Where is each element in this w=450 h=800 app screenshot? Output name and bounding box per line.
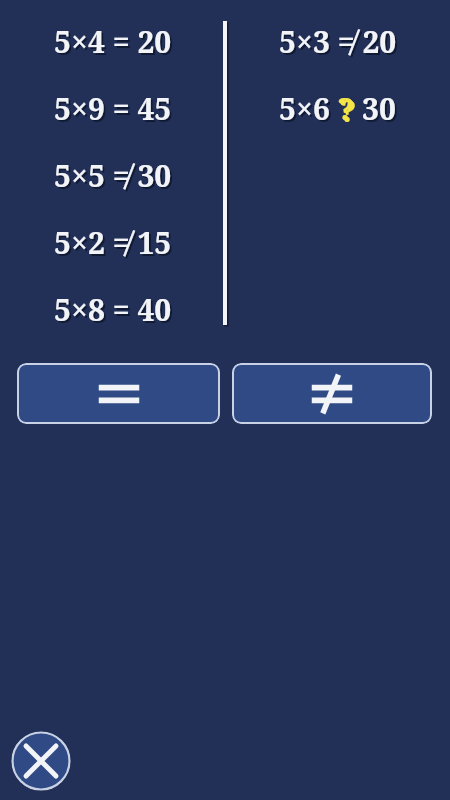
staticText: 5×3 ≠ 20	[281, 23, 399, 64]
staticText: 5×4 = 20	[54, 21, 172, 62]
staticText: 5×6 ? 30	[279, 88, 396, 129]
staticText: 5×5 ≠ 30	[54, 155, 172, 196]
staticText: 5×4 = 20	[56, 23, 174, 64]
staticText: 5×2 ≠ 15	[54, 222, 172, 263]
button[interactable]: Not equals	[232, 363, 432, 424]
staticText: 5×2 ≠ 15	[56, 224, 174, 265]
staticText: 5×9 = 45	[56, 90, 174, 131]
staticText: 5×5 ≠ 30	[56, 157, 174, 198]
staticText: 5×8 = 40	[54, 289, 172, 330]
staticText: 5×9 = 45	[54, 88, 172, 129]
button[interactable]: Close	[11, 731, 71, 791]
staticText: 5×3 ≠ 20	[279, 21, 397, 62]
staticText: 5×6 ? 30	[281, 90, 398, 131]
staticText: 5×8 = 40	[56, 291, 174, 332]
button[interactable]: Equals	[17, 363, 220, 424]
